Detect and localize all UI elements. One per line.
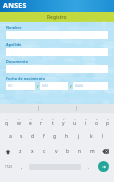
button[interactable]: Shift (1, 144, 15, 159)
staticText: q (5, 120, 9, 127)
staticText: z (19, 148, 22, 155)
staticText: , (21, 164, 23, 170)
button[interactable]: a (5, 129, 16, 144)
button[interactable]: ?123 (1, 165, 16, 169)
staticText: Apellido (6, 42, 22, 47)
staticText: x (31, 148, 34, 155)
staticText: a (9, 133, 12, 140)
button[interactable]: 2 (13, 114, 25, 129)
staticText: n (78, 148, 82, 155)
staticText: 1 (6, 117, 8, 120)
staticText: i (85, 120, 87, 127)
button[interactable]: 7 (69, 114, 80, 129)
staticText: Nombre (6, 25, 22, 30)
button[interactable]: c (38, 144, 50, 159)
button[interactable]: 8 (80, 114, 91, 129)
button[interactable]: m (86, 144, 98, 159)
button[interactable]: f (38, 129, 49, 144)
staticText: v (55, 148, 58, 155)
staticText: AAAA (75, 84, 84, 88)
staticText: 5 (52, 117, 54, 120)
staticText: 6 (63, 117, 65, 120)
staticText: e (29, 120, 32, 127)
button[interactable]: 4 (36, 114, 47, 129)
button[interactable]: . (83, 164, 94, 170)
button[interactable]: s (16, 129, 27, 144)
button[interactable]: x (26, 144, 38, 159)
staticText: 3 (30, 117, 32, 120)
staticText: b (66, 148, 70, 155)
staticText: p (106, 120, 110, 127)
staticText: Fecha de nacimiento (6, 76, 46, 81)
staticText: o (95, 120, 99, 127)
staticText: h (65, 133, 69, 140)
button[interactable]: b (62, 144, 74, 159)
button[interactable]: DD (6, 82, 35, 90)
staticText: f (43, 133, 45, 140)
staticText: d (31, 133, 35, 140)
button[interactable]: , (16, 164, 27, 170)
staticText: . (88, 164, 90, 170)
button[interactable]: h (61, 129, 73, 144)
staticText: g (53, 133, 57, 140)
button[interactable]: l (97, 129, 109, 144)
staticText: l (102, 133, 104, 140)
button[interactable]: d (27, 129, 38, 144)
staticText: m (90, 148, 95, 155)
staticText: y (62, 120, 65, 127)
staticText: ?123 (5, 165, 12, 169)
button[interactable]: k (85, 129, 97, 144)
staticText: Registro (47, 14, 67, 21)
button[interactable]: z (15, 144, 26, 159)
button[interactable]: g (49, 129, 61, 144)
button[interactable]: 9 (91, 114, 102, 129)
button[interactable]: 0 (102, 114, 113, 129)
button[interactable]: j (73, 129, 85, 144)
button[interactable]: Suggestion 2 (38, 104, 76, 113)
staticText: s (20, 133, 23, 140)
staticText: t (52, 120, 54, 127)
staticText: j (78, 133, 80, 140)
staticText: MM (42, 84, 48, 88)
staticText: r (40, 120, 43, 127)
staticText: 2 (18, 117, 20, 120)
staticText: 9 (96, 117, 98, 120)
staticText: Documento (6, 59, 29, 64)
staticText: 8 (85, 117, 87, 120)
staticText: 4 (41, 117, 43, 120)
staticText: k (90, 133, 93, 140)
staticText: u (73, 120, 77, 127)
button[interactable]: n (74, 144, 86, 159)
staticText: 0 (107, 117, 109, 120)
button[interactable]: Enter (98, 161, 109, 172)
button[interactable]: Backspace (98, 144, 113, 159)
staticText: / (70, 84, 72, 89)
button[interactable]: 5 (47, 114, 58, 129)
button[interactable]: Suggestion 3 (76, 104, 114, 113)
button[interactable]: 3 (25, 114, 36, 129)
staticText: w (17, 120, 21, 127)
button[interactable]: 1 (1, 114, 13, 129)
staticText: 7 (74, 117, 76, 120)
staticText: / (37, 84, 39, 89)
staticText: DD (8, 84, 13, 88)
button[interactable]: v (50, 144, 62, 159)
button[interactable]: MM (40, 82, 68, 90)
button[interactable]: 6 (58, 114, 69, 129)
staticText: ANSES (3, 1, 27, 11)
staticText: c (43, 148, 46, 155)
button[interactable]: AAAA (73, 82, 108, 90)
